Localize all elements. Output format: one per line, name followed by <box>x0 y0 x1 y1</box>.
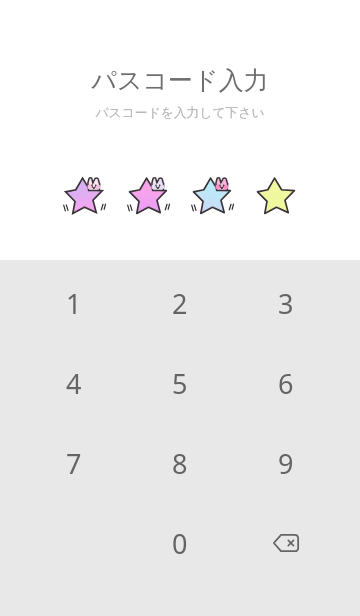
staticText: 8 <box>172 445 188 482</box>
staticText: 0 <box>172 525 188 562</box>
button[interactable]: 1 <box>21 263 127 343</box>
staticText: パスコード入力 <box>91 65 269 96</box>
button[interactable]: 3 <box>233 263 339 343</box>
staticText: 2 <box>172 285 188 322</box>
button[interactable]: 9 <box>233 423 339 503</box>
staticText: 9 <box>278 445 294 482</box>
staticText: 3 <box>278 285 294 322</box>
staticText: 6 <box>278 365 294 402</box>
staticText: 4 <box>66 365 82 402</box>
staticText: 5 <box>172 365 188 402</box>
button[interactable]: 2 <box>127 263 233 343</box>
button[interactable]: 5 <box>127 343 233 423</box>
staticText: 7 <box>66 445 82 482</box>
button[interactable]: 8 <box>127 423 233 503</box>
staticText: パスコードを入力して下さい <box>95 105 265 121</box>
button[interactable]: 7 <box>21 423 127 503</box>
staticText: 1 <box>66 285 82 322</box>
other: Delete <box>270 527 302 559</box>
button[interactable]: 0 <box>127 503 233 583</box>
button[interactable]: 6 <box>233 343 339 423</box>
button[interactable]: 4 <box>21 343 127 423</box>
button[interactable]: Delete <box>233 503 339 583</box>
